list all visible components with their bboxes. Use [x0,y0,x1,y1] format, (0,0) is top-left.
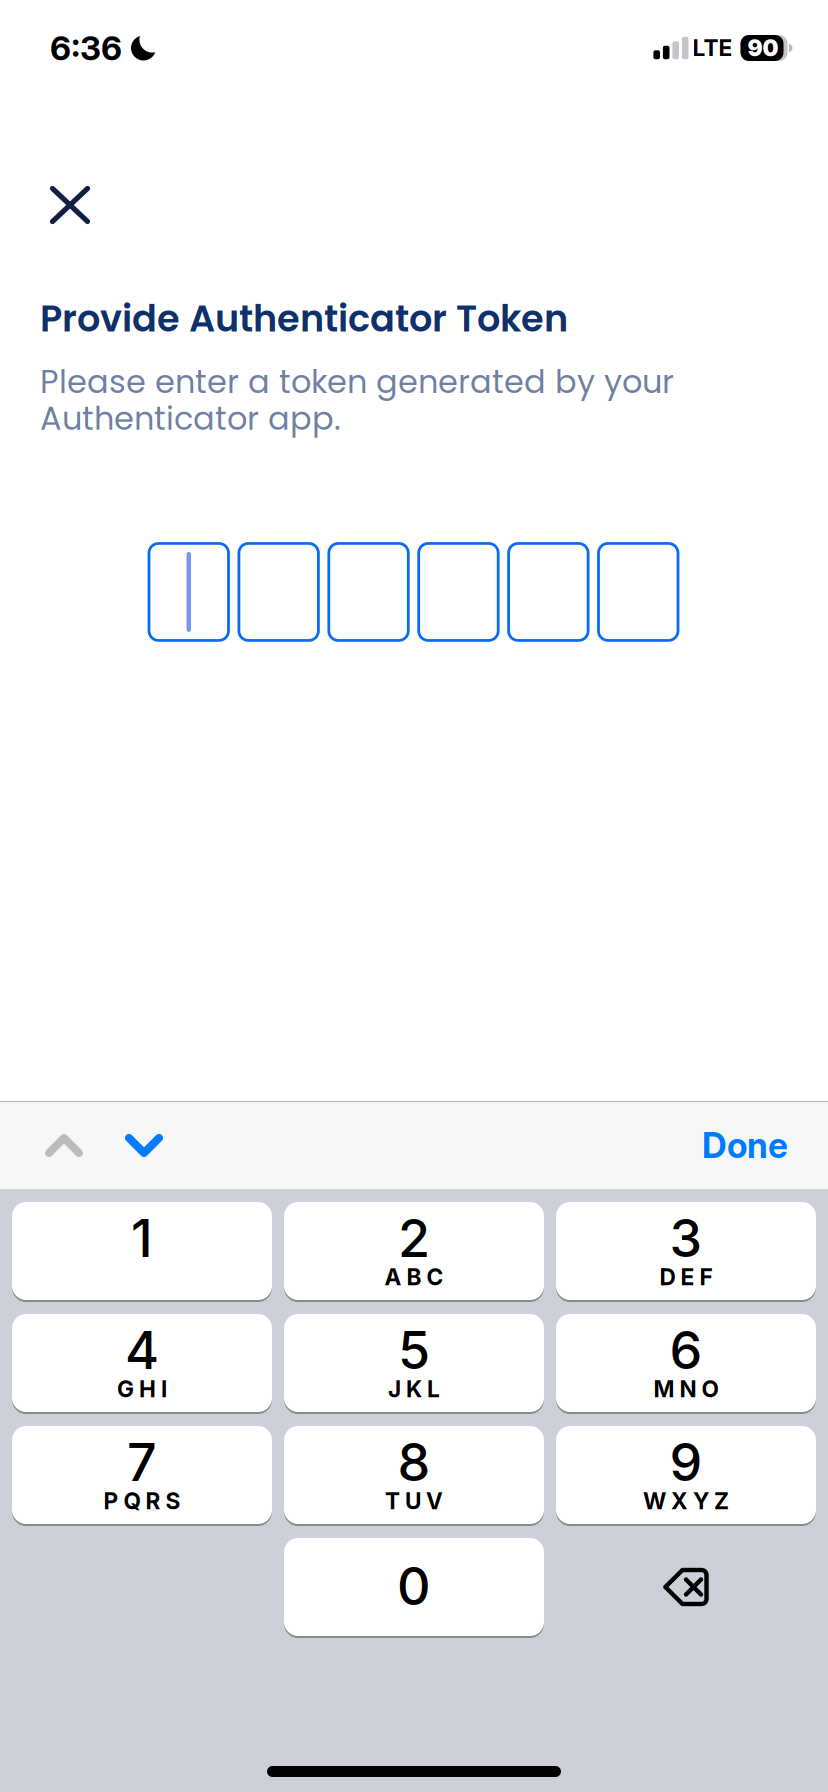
button[interactable]: Delete [556,1537,816,1637]
button[interactable]: 9 [556,1425,816,1525]
staticText: A B C [384,1263,443,1291]
button[interactable]: 6 [556,1313,816,1413]
button[interactable]: 7 [12,1425,272,1525]
staticText: 7 [127,1430,157,1493]
staticText: 5 [398,1318,430,1381]
button[interactable]: 4 [12,1313,272,1413]
staticText: J K L [388,1375,440,1403]
staticText: LTE [692,34,732,62]
staticText: Done [702,1124,788,1166]
staticText: 6 [669,1318,702,1381]
button[interactable]: 0 [284,1537,544,1637]
button[interactable]: 3 [556,1201,816,1301]
staticText: M N O [653,1375,718,1403]
staticText: Please enter a token generated by your [40,359,674,404]
staticText: 90 [747,34,778,62]
button[interactable]: Close [0,72,116,242]
staticText: W X Y Z [643,1487,729,1515]
button[interactable]: Previous field [25,1102,103,1189]
staticText: 8 [397,1430,430,1493]
staticText: 9 [669,1430,702,1493]
staticText: 2 [398,1206,430,1269]
staticText: 0 [397,1554,431,1617]
staticText: 4 [125,1318,159,1381]
button[interactable]: 1 [12,1201,272,1301]
staticText: Authenticator app. [40,396,341,441]
staticText: D E F [659,1263,712,1291]
staticText: 1 [131,1206,153,1269]
staticText: P Q R S [103,1487,180,1515]
button[interactable]: Next field [103,1102,181,1189]
staticText: 3 [669,1206,702,1269]
staticText: 6:36 [50,28,122,68]
staticText: Provide Authenticator Token [40,293,568,344]
button[interactable]: 2 [284,1201,544,1301]
button[interactable]: 5 [284,1313,544,1413]
button[interactable]: 8 [284,1425,544,1525]
staticText: G H I [117,1375,167,1403]
button[interactable]: Done [682,1093,808,1197]
staticText: T U V [385,1487,443,1515]
